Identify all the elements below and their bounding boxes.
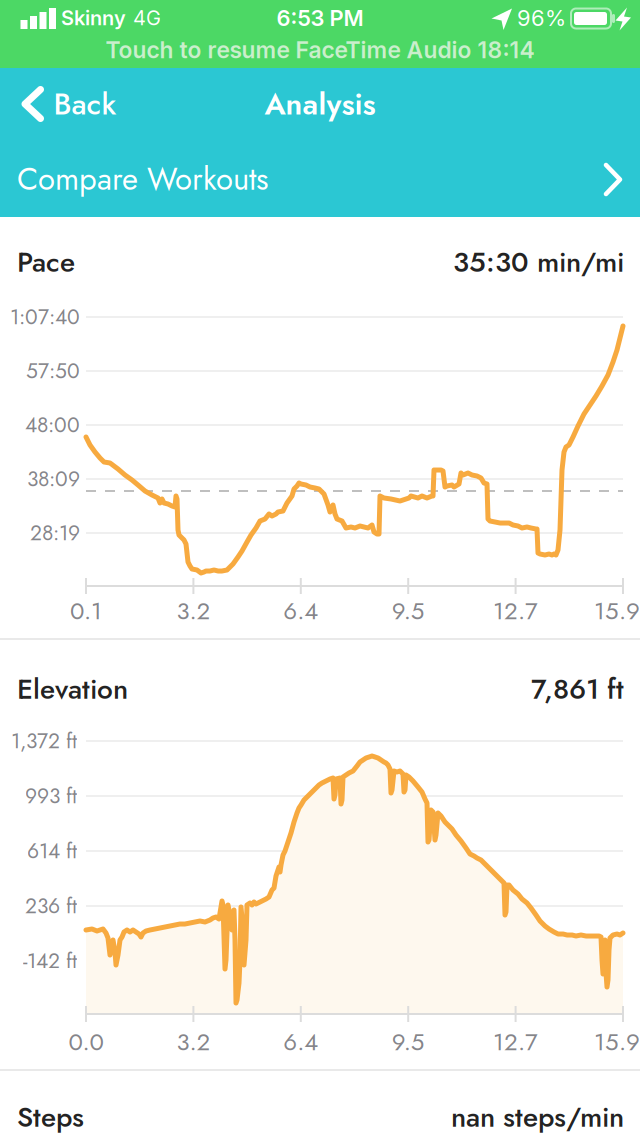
staticText: 993 ft — [25, 781, 77, 811]
staticText: nan steps/min — [451, 1097, 624, 1137]
staticText: 48:00 — [25, 410, 80, 440]
staticText: 0.1 — [70, 594, 102, 628]
staticText: 12.7 — [493, 1025, 538, 1059]
staticText: Steps — [17, 1097, 84, 1137]
staticText: 9.5 — [392, 594, 425, 628]
button[interactable]: Back — [14, 67, 124, 141]
staticText: 35:30 min/mi — [453, 242, 624, 282]
staticText: Pace — [17, 242, 75, 282]
button[interactable]: Compare Workouts — [0, 142, 640, 217]
staticText: Elevation — [17, 669, 128, 709]
staticText: Back — [53, 82, 116, 126]
staticText: 96% — [517, 5, 566, 31]
staticText: 15.9 — [594, 1025, 640, 1059]
staticText: Compare Workouts — [17, 157, 268, 201]
staticText: -142 ft — [23, 946, 77, 976]
staticText: 9.5 — [392, 1025, 425, 1059]
staticText: Touch to resume FaceTime Audio 18:14 — [105, 36, 534, 64]
staticText: Analysis — [264, 82, 375, 126]
staticText: 236 ft — [25, 891, 77, 921]
staticText: 6:53 PM — [276, 5, 363, 31]
staticText: 6.4 — [283, 594, 318, 628]
staticText: 38:09 — [27, 464, 80, 494]
staticText: 12.7 — [493, 594, 538, 628]
staticText: 57:50 — [26, 356, 80, 386]
button[interactable]: Touch to resume FaceTime Audio 18:14 — [0, 34, 640, 66]
staticText: 6.4 — [283, 1025, 318, 1059]
staticText: 4G — [133, 6, 161, 30]
staticText: 1,372 ft — [11, 726, 77, 756]
staticText: 1:07:40 — [10, 302, 80, 332]
staticText: 614 ft — [27, 836, 77, 866]
staticText: 7,861 ft — [531, 669, 624, 709]
staticText: Skinny — [61, 6, 126, 30]
staticText: 3.2 — [176, 594, 210, 628]
staticText: 0.0 — [68, 1025, 103, 1059]
staticText: 28:19 — [30, 518, 80, 548]
staticText: 15.9 — [594, 594, 640, 628]
staticText: 3.2 — [176, 1025, 210, 1059]
